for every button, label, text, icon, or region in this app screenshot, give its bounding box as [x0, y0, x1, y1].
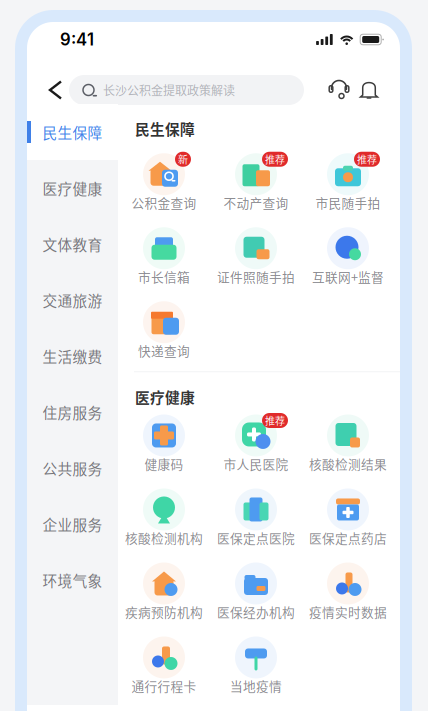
staticText: 环境气象: [42, 569, 102, 591]
button[interactable]: 医保经办机构: [210, 556, 302, 630]
staticText: 医保经办机构: [217, 602, 295, 621]
button[interactable]: 推荐: [302, 147, 394, 221]
button[interactable]: 生活缴费: [27, 328, 118, 384]
staticText: 生活缴费: [42, 345, 102, 367]
staticText: 互联网+监督: [312, 267, 384, 285]
staticText: 文体教育: [42, 233, 102, 255]
staticText: 医保定点医院: [217, 528, 295, 547]
staticText: 核酸检测结果: [309, 454, 387, 473]
button[interactable]: 互联网+监督: [302, 221, 394, 295]
button[interactable]: 客服: [324, 73, 354, 107]
staticText: 公共服务: [42, 457, 102, 479]
button[interactable]: 通行行程卡: [118, 630, 210, 704]
button[interactable]: 医保定点医院: [210, 482, 302, 556]
button[interactable]: 核酸检测机构: [118, 482, 210, 556]
staticText: 疾病预防机构: [125, 602, 203, 621]
staticText: 医疗健康: [42, 177, 102, 199]
button[interactable]: 疾病预防机构: [118, 556, 210, 630]
staticText: 市人民医院: [223, 454, 288, 473]
button[interactable]: 健康码: [118, 408, 210, 482]
button[interactable]: 民生保障: [27, 104, 118, 160]
button[interactable]: 推荐: [210, 147, 302, 221]
staticText: 医疗健康: [135, 386, 195, 407]
staticText: 核酸检测机构: [125, 528, 203, 547]
button[interactable]: 推荐: [210, 408, 302, 482]
staticText: 健康码: [144, 454, 183, 473]
staticText: 新: [178, 152, 188, 166]
staticText: 当地疫情: [230, 676, 282, 695]
staticText: 通行行程卡: [131, 676, 196, 695]
staticText: 9:41: [60, 29, 94, 50]
staticText: 交通旅游: [42, 289, 102, 311]
staticText: 民生保障: [135, 118, 195, 139]
button[interactable]: 企业服务: [27, 496, 118, 552]
button[interactable]: 医疗健康: [27, 160, 118, 216]
staticText: 住房服务: [42, 401, 102, 423]
button[interactable]: 市长信箱: [118, 221, 210, 295]
button[interactable]: 文体教育: [27, 216, 118, 272]
button[interactable]: 交通旅游: [27, 272, 118, 328]
button[interactable]: 新: [118, 147, 210, 221]
button[interactable]: 疫情实时数据: [302, 556, 394, 630]
staticText: 推荐: [357, 152, 377, 166]
button[interactable]: 医保定点药店: [302, 482, 394, 556]
button[interactable]: 证件照随手拍: [210, 221, 302, 295]
button[interactable]: 当地疫情: [210, 630, 302, 704]
button[interactable]: 长沙公积金提取政策解读: [69, 75, 304, 105]
staticText: 推荐: [265, 152, 285, 166]
staticText: 长沙公积金提取政策解读: [103, 81, 235, 99]
button[interactable]: 环境气象: [27, 552, 118, 608]
button[interactable]: 核酸检测结果: [302, 408, 394, 482]
staticText: 企业服务: [42, 513, 102, 535]
button[interactable]: 住房服务: [27, 384, 118, 440]
staticText: 不动产查询: [223, 193, 288, 211]
staticText: 推荐: [265, 413, 285, 428]
staticText: 医保定点药店: [309, 528, 387, 547]
staticText: 市长信箱: [138, 267, 190, 285]
staticText: 民生保障: [42, 121, 102, 143]
button[interactable]: 公共服务: [27, 440, 118, 496]
button[interactable]: 通知: [354, 73, 384, 107]
staticText: 疫情实时数据: [309, 602, 387, 621]
staticText: 市民随手拍: [315, 193, 380, 211]
staticText: 公积金查询: [131, 193, 196, 211]
staticText: 证件照随手拍: [217, 267, 295, 285]
button[interactable]: 快递查询: [118, 295, 210, 369]
button[interactable]: 返回: [42, 73, 69, 107]
staticText: 快递查询: [138, 341, 190, 359]
